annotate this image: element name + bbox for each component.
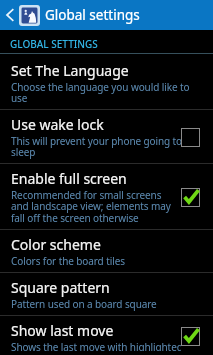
button[interactable]: Color scheme <box>0 230 213 273</box>
staticText: Recommended for small screens and landsc… <box>11 188 171 225</box>
staticText: Square pattern <box>11 278 110 297</box>
staticText: Choose the language you would like to us… <box>11 80 190 105</box>
button[interactable]: Enable full screen <box>0 164 213 230</box>
staticText: Use wake lock <box>11 115 104 134</box>
staticText: Colors for the board tiles <box>11 254 125 268</box>
button[interactable]: Show last move <box>0 316 213 355</box>
button[interactable]: Square pattern <box>0 273 213 316</box>
staticText: Global settings <box>45 6 140 24</box>
staticText: Color scheme <box>11 235 101 254</box>
button[interactable]: Use wake lock <box>0 110 213 164</box>
staticText: Enable full screen <box>11 169 127 188</box>
staticText: This will prevent your phone going to sl… <box>11 134 181 159</box>
button[interactable]: Set The Language <box>0 56 213 110</box>
staticText: Shows the last move with highlighted <box>11 340 181 351</box>
button[interactable]: Back <box>0 0 19 30</box>
staticText: Pattern used on a board square <box>11 297 157 311</box>
staticText: Show last move <box>11 321 114 340</box>
staticText: GLOBAL SETTINGS <box>10 37 98 51</box>
staticText: Set The Language <box>11 61 129 80</box>
